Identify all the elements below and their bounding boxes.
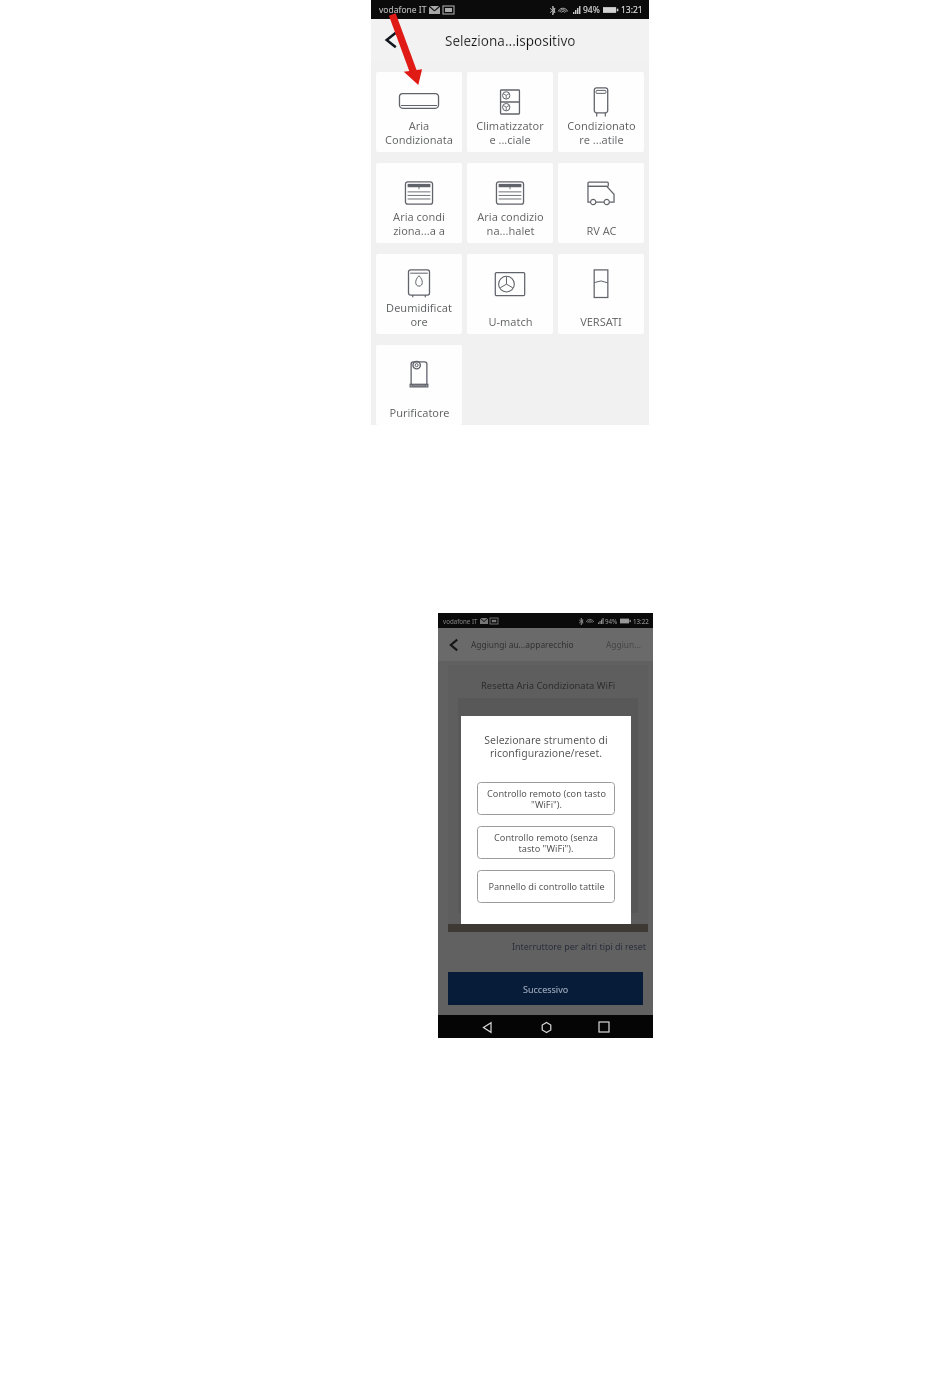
- button[interactable]: Interruttore per altri tipi di reset: [512, 934, 647, 958]
- staticText: vodafone IT: [443, 617, 478, 625]
- staticText: 94%: [605, 617, 618, 625]
- staticText: Aggiungi au...apparecchio: [471, 639, 574, 650]
- staticText: 13:22: [633, 617, 649, 625]
- staticText: 94%: [583, 4, 600, 16]
- staticText: Aggiun...: [606, 639, 641, 650]
- button[interactable]: Aria condi ziona...a a: [376, 163, 462, 243]
- staticText: Condizionato re ...atile: [567, 118, 636, 147]
- button[interactable]: Back: [377, 27, 401, 53]
- staticText: Purificatore: [389, 405, 450, 420]
- button[interactable]: Condizionato re ...atile: [558, 72, 644, 152]
- button[interactable]: Aria Condizionata: [376, 72, 462, 152]
- staticText: 13:21: [621, 4, 643, 16]
- staticText: RV AC: [586, 223, 617, 238]
- staticText: Selezionare strumento di riconfigurazion…: [484, 733, 608, 760]
- staticText: Aria condizio na...halet: [477, 209, 544, 238]
- button[interactable]: Back: [446, 635, 462, 655]
- staticText: vodafone IT: [379, 4, 427, 16]
- button[interactable]: Deumidificat ore: [376, 254, 462, 334]
- button[interactable]: U-match: [467, 254, 553, 334]
- staticText: Controllo remoto (senza tasto "WiFi").: [494, 831, 598, 855]
- button[interactable]: Climatizzator e ...ciale: [467, 72, 553, 152]
- button[interactable]: Purificatore: [376, 345, 462, 425]
- staticText: Climatizzator e ...ciale: [476, 118, 544, 147]
- staticText: Deumidificat ore: [386, 300, 452, 329]
- button[interactable]: Controllo remoto (senza tasto "WiFi").: [477, 826, 615, 859]
- staticText: Aria Condizionata: [385, 118, 453, 147]
- button[interactable]: RV AC: [558, 163, 644, 243]
- button[interactable]: VERSATI: [558, 254, 644, 334]
- staticText: Controllo remoto (con tasto "WiFi").: [487, 787, 606, 811]
- staticText: VERSATI: [580, 314, 622, 329]
- staticText: Pannello di controllo tattile: [488, 880, 605, 893]
- staticText: U-match: [488, 314, 533, 329]
- button[interactable]: Successivo: [448, 972, 643, 1005]
- staticText: Successivo: [523, 983, 569, 995]
- button[interactable]: Home: [536, 1017, 556, 1037]
- button[interactable]: Pannello di controllo tattile: [477, 870, 615, 903]
- button[interactable]: Aria condizio na...halet: [467, 163, 553, 243]
- button[interactable]: Back: [477, 1017, 497, 1037]
- button[interactable]: Aggiun...: [604, 630, 653, 659]
- button[interactable]: Controllo remoto (con tasto "WiFi").: [477, 782, 615, 815]
- staticText: Interruttore per altri tipi di reset: [512, 940, 647, 952]
- staticText: Aria condi ziona...a a: [393, 209, 445, 238]
- staticText: Seleziona...ispositivo: [445, 32, 576, 50]
- staticText: Resetta Aria Condizionata WiFi: [481, 679, 616, 692]
- button[interactable]: Recents: [594, 1017, 614, 1037]
